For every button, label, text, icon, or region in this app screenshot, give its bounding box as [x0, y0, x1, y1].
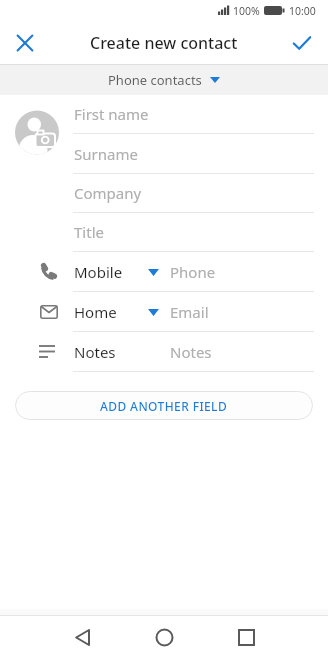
staticText: Create new contact: [90, 32, 238, 54]
staticText: Phone contacts: [108, 71, 202, 89]
button[interactable]: [73, 338, 314, 370]
staticText: 100%: [233, 4, 260, 18]
staticText: 10:00: [289, 4, 316, 18]
staticText: Notes: [170, 342, 212, 362]
button[interactable]: [4, 22, 46, 64]
staticText: First name: [74, 104, 149, 124]
staticText: Notes: [74, 342, 116, 362]
staticText: Home: [74, 302, 117, 322]
button[interactable]: [225, 616, 267, 656]
button[interactable]: [281, 22, 323, 64]
button[interactable]: [170, 298, 314, 330]
button[interactable]: [73, 141, 314, 173]
staticText: Title: [74, 222, 104, 242]
staticText: ADD ANOTHER FIELD: [100, 398, 228, 414]
button[interactable]: [143, 616, 185, 656]
staticText: Email: [170, 302, 209, 322]
staticText: Mobile: [74, 262, 123, 282]
staticText: Surname: [74, 144, 138, 164]
staticText: Phone: [170, 262, 216, 282]
button[interactable]: [138, 262, 168, 282]
staticText: Company: [74, 183, 142, 203]
button[interactable]: Phone contacts: [0, 65, 328, 95]
button[interactable]: [73, 219, 314, 251]
button[interactable]: [73, 101, 314, 133]
button[interactable]: [73, 180, 314, 212]
button[interactable]: ADD ANOTHER FIELD: [15, 391, 313, 420]
button[interactable]: [13, 108, 63, 158]
button[interactable]: [61, 616, 103, 656]
button[interactable]: [138, 302, 168, 322]
button[interactable]: [170, 258, 314, 290]
